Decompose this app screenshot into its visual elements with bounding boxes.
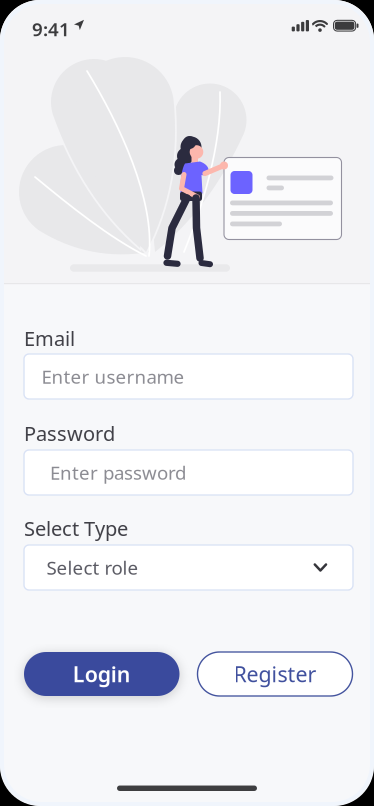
button[interactable]: Register xyxy=(197,652,352,696)
button[interactable]: Select role xyxy=(24,545,353,590)
staticText: Email xyxy=(24,325,75,352)
staticText: Register xyxy=(233,660,316,688)
staticText: 9:41 xyxy=(32,16,70,41)
button[interactable]: Enter password xyxy=(24,450,353,495)
staticText: Select role xyxy=(46,555,138,580)
staticText: Enter username xyxy=(41,364,184,389)
staticText: Password xyxy=(24,420,115,447)
button[interactable]: Enter username xyxy=(24,354,353,399)
staticText: Enter password xyxy=(50,460,186,485)
staticText: Login xyxy=(73,660,131,688)
button[interactable]: Login xyxy=(24,652,179,696)
staticText: Select Type xyxy=(24,515,128,542)
